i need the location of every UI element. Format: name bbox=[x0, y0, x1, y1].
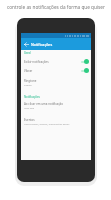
staticText: Geral bbox=[24, 51, 31, 55]
button[interactable]: Ao clicar em uma notificação bbox=[21, 100, 91, 112]
staticText: Ringtone bbox=[24, 79, 37, 83]
staticText: Vibrar bbox=[24, 69, 80, 73]
button[interactable]: Exibir notificações bbox=[21, 57, 91, 66]
staticText: Ao clicar em uma notificação bbox=[24, 102, 63, 106]
staticText: Novos vídeos, atrasos, informações gerai… bbox=[24, 123, 70, 126]
button[interactable]: Back bbox=[21, 38, 31, 50]
staticText: Exibir notificações bbox=[24, 60, 80, 64]
staticText: Eventos bbox=[24, 118, 35, 122]
staticText: controle as notificações da forma que qu… bbox=[7, 4, 105, 10]
button[interactable]: Vibrar bbox=[21, 66, 91, 75]
staticText: Abrir app bbox=[24, 107, 35, 110]
staticText: Notificações bbox=[31, 42, 53, 47]
staticText: Padrão bbox=[24, 84, 32, 87]
staticText: Notificações bbox=[24, 95, 40, 99]
button[interactable]: Ringtone bbox=[21, 77, 91, 89]
button[interactable]: Eventos bbox=[21, 116, 91, 128]
